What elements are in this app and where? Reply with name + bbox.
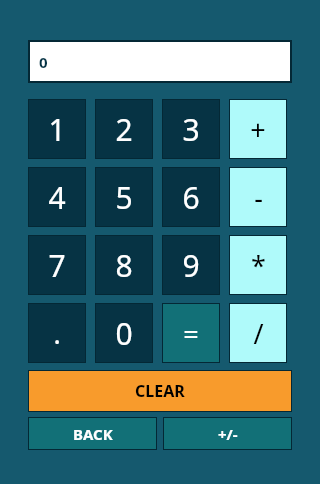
button[interactable]: = xyxy=(163,304,219,362)
button[interactable]: 6 xyxy=(163,168,219,226)
staticText: 4 xyxy=(48,177,66,218)
button[interactable]: + xyxy=(230,100,286,158)
button[interactable]: . xyxy=(29,304,85,362)
staticText: BACK xyxy=(73,424,113,444)
staticText: = xyxy=(183,315,199,352)
staticText: * xyxy=(251,247,266,284)
button[interactable]: 0 xyxy=(30,42,290,81)
staticText: 1 xyxy=(48,109,66,150)
button[interactable]: CLEAR xyxy=(29,371,291,411)
staticText: . xyxy=(53,315,61,352)
button[interactable]: 7 xyxy=(29,236,85,294)
staticText: +/- xyxy=(218,424,238,444)
staticText: 9 xyxy=(182,245,200,286)
button[interactable]: 2 xyxy=(96,100,152,158)
button[interactable]: / xyxy=(230,304,286,362)
staticText: CLEAR xyxy=(135,380,185,402)
button[interactable]: 9 xyxy=(163,236,219,294)
staticText: + xyxy=(250,111,266,148)
staticText: 5 xyxy=(115,177,133,218)
button[interactable]: Toggle sign xyxy=(164,418,291,449)
staticText: / xyxy=(253,315,264,352)
staticText: 2 xyxy=(115,109,133,150)
staticText: 7 xyxy=(48,245,66,286)
button[interactable]: 4 xyxy=(29,168,85,226)
button[interactable]: BACK xyxy=(29,418,156,449)
button[interactable]: 3 xyxy=(163,100,219,158)
staticText: 6 xyxy=(182,177,200,218)
staticText: 8 xyxy=(115,245,133,286)
button[interactable]: - xyxy=(230,168,286,226)
staticText: 3 xyxy=(182,109,200,150)
button[interactable]: 5 xyxy=(96,168,152,226)
staticText: - xyxy=(254,179,263,216)
staticText: 0 xyxy=(39,52,48,72)
button[interactable]: 8 xyxy=(96,236,152,294)
staticText: 0 xyxy=(115,313,133,354)
button[interactable]: 0 xyxy=(96,304,152,362)
button[interactable]: 1 xyxy=(29,100,85,158)
button[interactable]: * xyxy=(230,236,286,294)
